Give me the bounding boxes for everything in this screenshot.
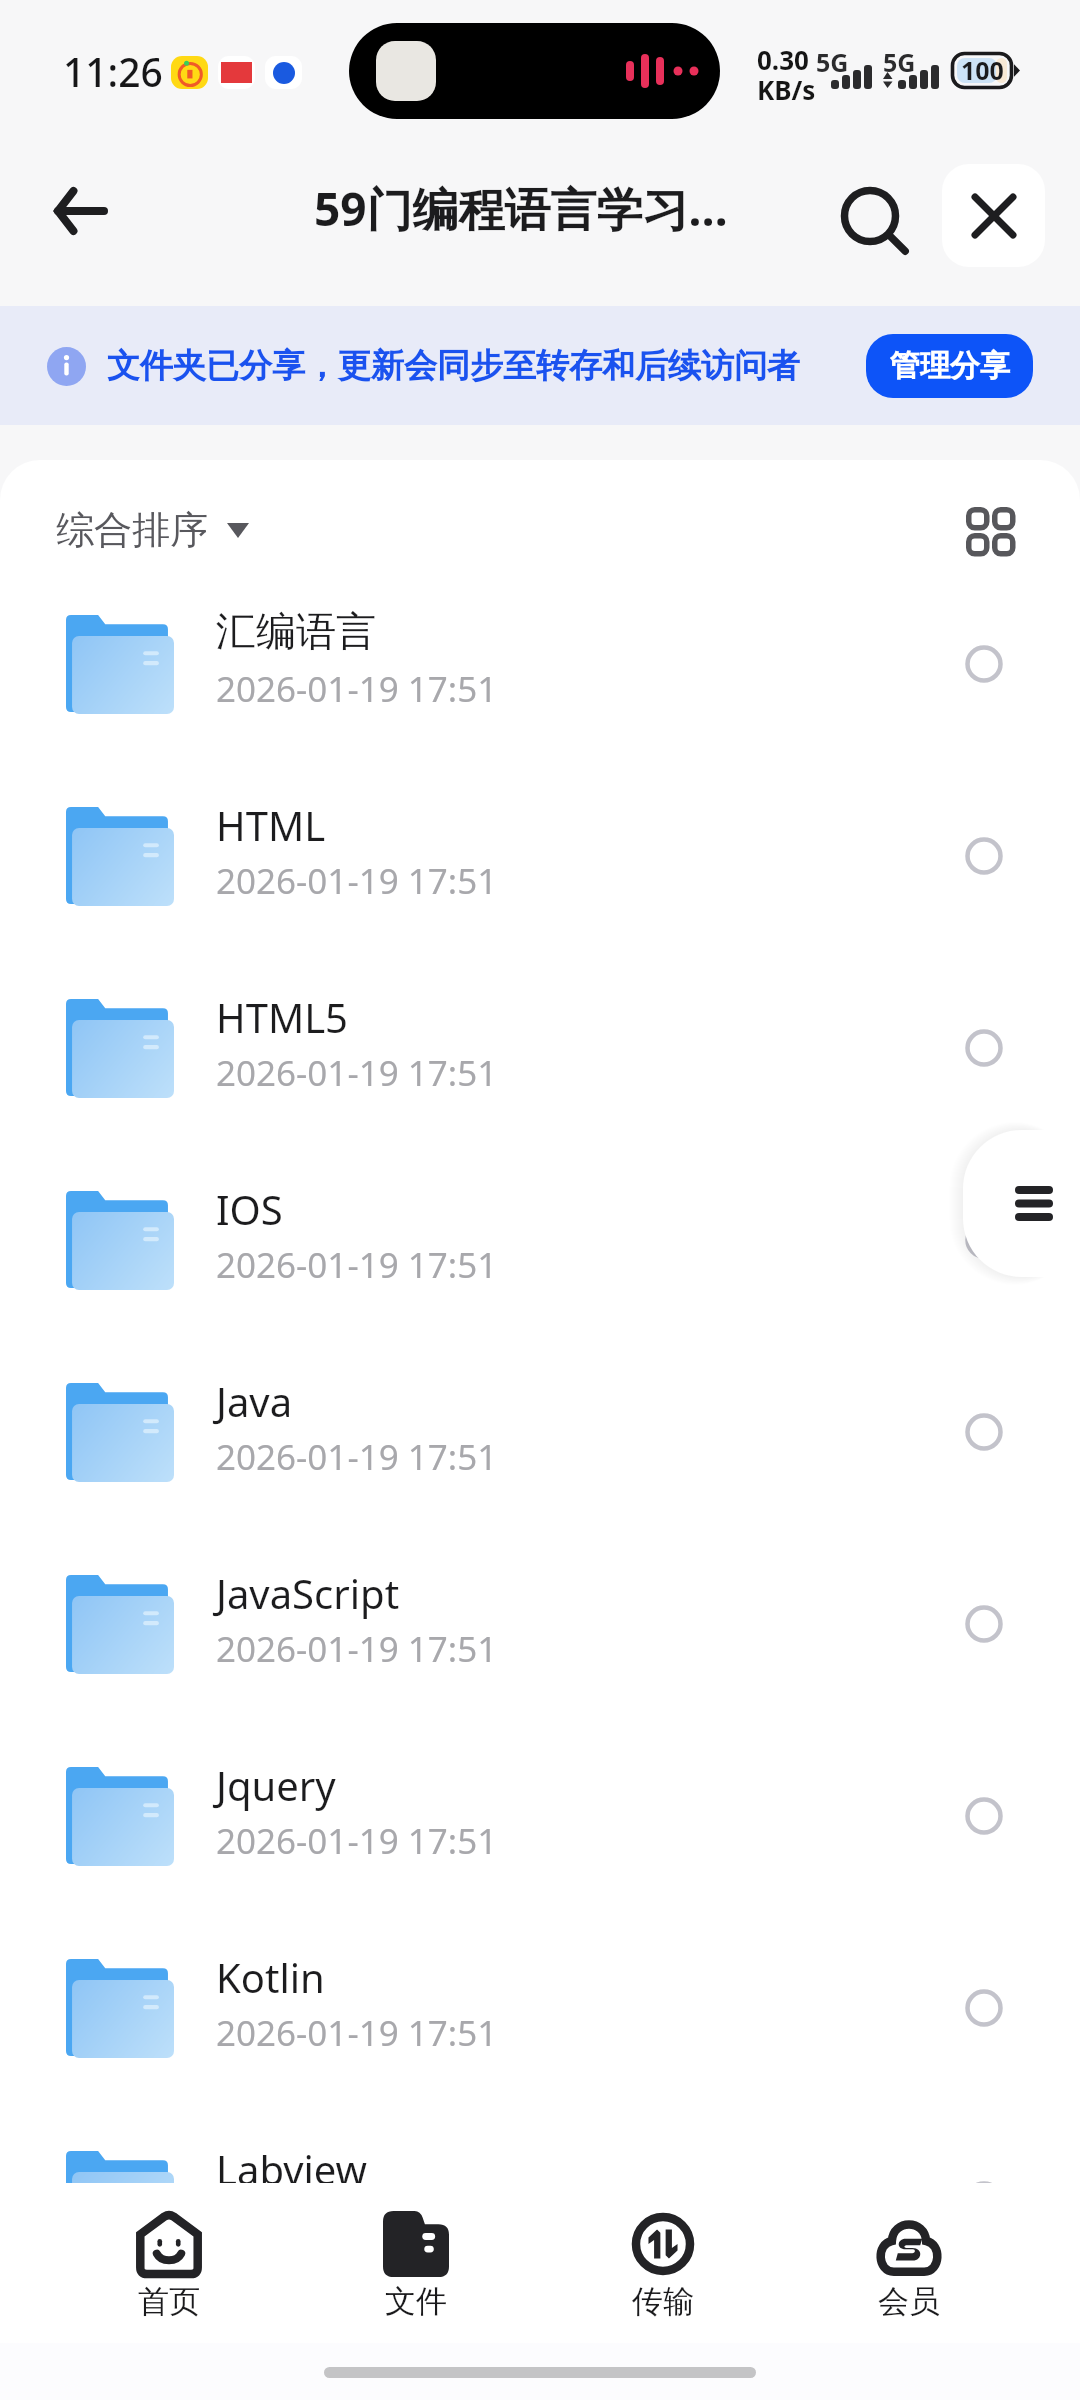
button[interactable]: 管理分享 [866, 334, 1033, 398]
button[interactable]: 会员 [819, 2183, 999, 2343]
staticText: 首页 [138, 2282, 200, 2321]
button[interactable]: Select [948, 1972, 1020, 2044]
staticText: 会员 [878, 2282, 940, 2321]
button[interactable]: Menu [963, 1130, 1080, 1277]
button[interactable]: Select [948, 1780, 1020, 1852]
button[interactable]: Kotlin [0, 1930, 1080, 2122]
button[interactable]: 汇编语言 [0, 586, 1080, 778]
button[interactable]: Select [948, 1396, 1020, 1468]
button[interactable]: Select [948, 1012, 1020, 1084]
staticText: 文件夹已分享，更新会同步至转存和后续访问者 [107, 345, 800, 387]
button[interactable]: Close [942, 164, 1045, 267]
staticText: 2026-01-19 17:51 [216, 2201, 498, 2249]
button[interactable]: 传输 [573, 2183, 753, 2343]
staticText: JavaScript [216, 1566, 400, 1620]
staticText: 传输 [632, 2282, 694, 2321]
staticText: 2026-01-19 17:51 [216, 1625, 498, 1673]
staticText: 综合排序 [56, 506, 208, 554]
staticText: 文件 [385, 2282, 447, 2321]
staticText: 0.30 [757, 42, 809, 77]
button[interactable]: 首页 [79, 2183, 259, 2343]
staticText: IOS [216, 1182, 283, 1236]
staticText: 5G [883, 45, 916, 79]
staticText: 5G [816, 45, 849, 79]
button[interactable]: IOS [0, 1162, 1080, 1354]
staticText: Java [216, 1374, 293, 1428]
button[interactable]: Back [28, 163, 134, 269]
staticText: 59门编程语言学习… [314, 177, 728, 240]
staticText: Labview [216, 2142, 368, 2196]
staticText: 2026-01-19 17:51 [216, 665, 498, 713]
staticText: 2026-01-19 17:51 [216, 1433, 498, 1481]
button[interactable]: Select [948, 1204, 1020, 1276]
staticText: 2026-01-19 17:51 [216, 2009, 498, 2057]
staticText: KB/s [757, 72, 816, 107]
button[interactable]: Labview [0, 2122, 1080, 2314]
staticText: 汇编语言 [216, 606, 376, 656]
staticText: 2026-01-19 17:51 [216, 1241, 498, 1289]
button[interactable]: Select [948, 2164, 1020, 2236]
button[interactable]: Search [818, 163, 924, 269]
button[interactable]: HTML5 [0, 970, 1080, 1162]
staticText: HTML [216, 798, 326, 852]
button[interactable]: Java [0, 1354, 1080, 1546]
staticText: 100 [961, 53, 1004, 87]
button[interactable]: Select [948, 628, 1020, 700]
staticText: Jquery [216, 1758, 336, 1812]
staticText: 管理分享 [890, 347, 1010, 385]
button[interactable]: JavaScript [0, 1546, 1080, 1738]
staticText: 2026-01-19 17:51 [216, 857, 498, 905]
button[interactable]: HTML [0, 778, 1080, 970]
button[interactable]: Grid view [950, 485, 1030, 565]
button[interactable]: Select [948, 820, 1020, 892]
button[interactable]: Select [948, 1588, 1020, 1660]
staticText: 2026-01-19 17:51 [216, 1049, 498, 1097]
button[interactable]: Jquery [0, 1738, 1080, 1930]
button[interactable]: 综合排序 [36, 486, 270, 574]
staticText: 11:26 [63, 45, 163, 98]
button[interactable]: 文件 [326, 2183, 506, 2343]
staticText: Kotlin [216, 1950, 325, 2004]
staticText: 2026-01-19 17:51 [216, 1817, 498, 1865]
staticText: HTML5 [216, 990, 348, 1044]
